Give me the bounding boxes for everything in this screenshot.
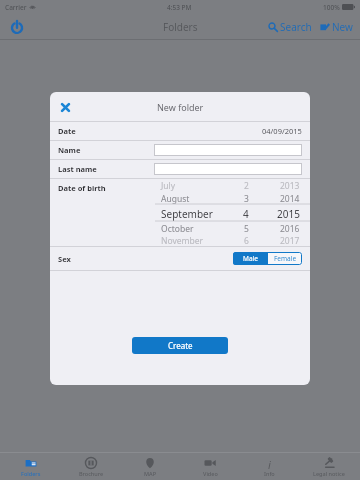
- staticText: Create: [168, 340, 193, 351]
- staticText: 2: [244, 180, 249, 192]
- staticText: 4: [243, 207, 249, 221]
- staticText: 6: [244, 235, 249, 246]
- staticText: August: [161, 193, 190, 205]
- button[interactable]: Video: [182, 453, 238, 480]
- staticText: New: [332, 20, 353, 34]
- staticText: 5: [244, 223, 249, 235]
- staticText: 100%: [323, 3, 340, 12]
- staticText: Video: [203, 470, 218, 477]
- staticText: Sex: [58, 254, 71, 264]
- button[interactable]: Brochure: [63, 453, 119, 480]
- button[interactable]: Male: [233, 252, 267, 265]
- staticText: July: [161, 180, 176, 192]
- button[interactable]: Close: [57, 99, 73, 115]
- staticText: 2015: [277, 207, 300, 221]
- button[interactable]: MAP: [122, 453, 178, 480]
- button[interactable]: [154, 163, 302, 175]
- staticText: 4:53 PM: [167, 3, 192, 12]
- staticText: MAP: [144, 470, 157, 477]
- button[interactable]: Power: [6, 16, 28, 38]
- staticText: Brochure: [79, 470, 104, 477]
- staticText: 2016: [280, 223, 300, 235]
- button[interactable]: Female: [268, 252, 302, 265]
- staticText: Folders: [21, 470, 41, 477]
- button[interactable]: Folders: [3, 453, 59, 480]
- staticText: i: [268, 457, 271, 469]
- staticText: Female: [274, 254, 297, 263]
- button[interactable]: Create: [132, 337, 228, 354]
- button[interactable]: July: [155, 179, 310, 246]
- button[interactable]: [154, 144, 302, 156]
- staticText: Male: [243, 254, 258, 263]
- staticText: Date: [58, 126, 76, 136]
- button[interactable]: Search: [266, 17, 314, 37]
- staticText: 04/09/2015: [262, 126, 302, 136]
- staticText: Carrier: [5, 3, 27, 12]
- staticText: 2014: [280, 193, 300, 205]
- button[interactable]: Legal notice: [301, 453, 357, 480]
- staticText: Search: [280, 20, 312, 34]
- staticText: New folder: [157, 101, 204, 113]
- staticText: Folders: [163, 20, 198, 34]
- staticText: 2017: [280, 235, 300, 246]
- staticText: Name: [58, 145, 81, 155]
- staticText: Info: [264, 470, 275, 477]
- staticText: 3: [244, 193, 249, 205]
- staticText: 2013: [280, 180, 300, 192]
- staticText: November: [161, 235, 204, 246]
- staticText: September: [161, 207, 213, 221]
- staticText: Last name: [58, 164, 97, 174]
- staticText: Date of birth: [58, 183, 106, 193]
- staticText: Legal notice: [313, 470, 345, 477]
- staticText: October: [161, 223, 194, 235]
- button[interactable]: New: [318, 17, 355, 37]
